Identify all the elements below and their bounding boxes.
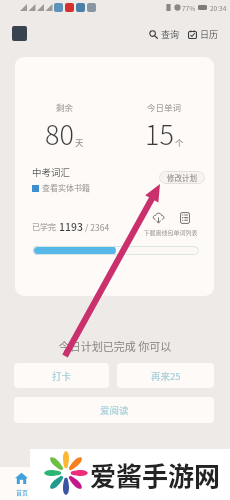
button[interactable]: 爱阅读 bbox=[14, 397, 214, 423]
staticText: 单词列表 bbox=[173, 228, 198, 237]
button[interactable]: 修改计划 bbox=[159, 171, 205, 184]
staticText: 今日单词 bbox=[147, 101, 182, 113]
staticText: 今日计划已完成 你可以 bbox=[0, 338, 230, 354]
staticText: 修改计划 bbox=[167, 172, 197, 183]
staticText: 80 bbox=[45, 114, 74, 153]
staticText: 已学完 bbox=[32, 221, 56, 233]
button[interactable]: Profile bbox=[12, 26, 27, 41]
staticText: 20:34 bbox=[210, 3, 227, 12]
button[interactable]: 再来25 bbox=[117, 363, 214, 388]
button[interactable]: 查询 bbox=[146, 26, 183, 43]
button[interactable]: Home tab bbox=[10, 472, 34, 496]
staticText: / 2364 bbox=[85, 221, 110, 233]
staticText: 日历 bbox=[200, 28, 219, 41]
staticText: 查询 bbox=[161, 28, 180, 41]
button[interactable]: 日历 bbox=[185, 26, 222, 43]
staticText: 1193 bbox=[59, 219, 83, 234]
staticText: 爱酱手游网 bbox=[90, 456, 221, 494]
staticText: 中考词汇 bbox=[32, 165, 71, 179]
staticText: 打卡 bbox=[52, 369, 72, 383]
button[interactable]: Word list bbox=[174, 212, 196, 238]
staticText: 查看实体书籍 bbox=[42, 182, 90, 194]
staticText: 爱阅读 bbox=[100, 403, 129, 417]
staticText: 天 bbox=[75, 136, 84, 148]
button[interactable]: 打卡 bbox=[14, 363, 109, 388]
staticText: 首页 bbox=[10, 488, 34, 497]
staticText: 77% bbox=[182, 3, 196, 12]
staticText: 15 bbox=[145, 114, 174, 153]
staticText: 再来25 bbox=[151, 369, 181, 383]
button[interactable]: Download offline pack bbox=[145, 212, 171, 238]
staticText: 下载离线包 bbox=[143, 228, 174, 237]
staticText: 个 bbox=[175, 136, 184, 148]
staticText: 剩余 bbox=[56, 101, 74, 113]
